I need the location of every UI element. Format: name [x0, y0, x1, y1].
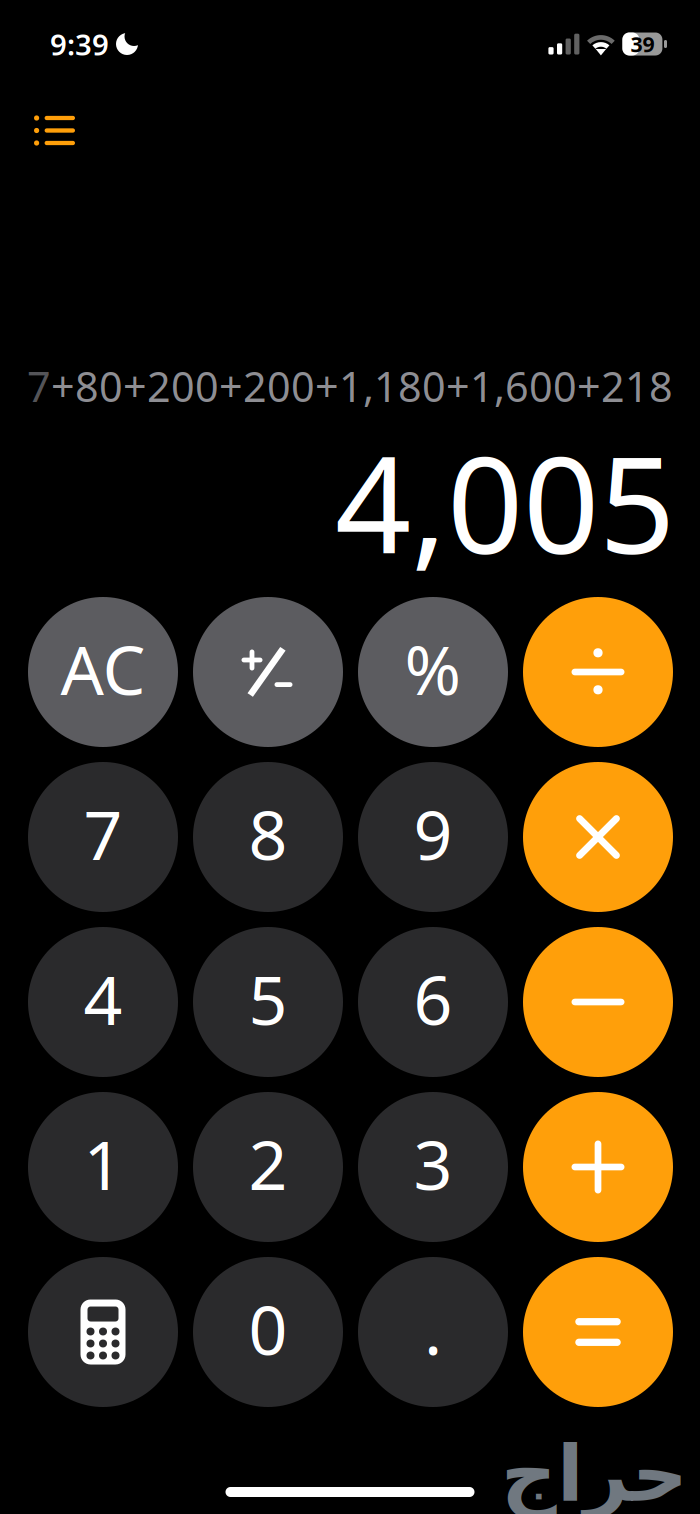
staticText: 39: [630, 30, 654, 58]
staticText: حراج: [500, 1430, 687, 1514]
button[interactable]: Percent: [358, 597, 508, 747]
staticText: .: [424, 1283, 442, 1374]
button[interactable]: 9: [358, 762, 508, 912]
button[interactable]: History: [20, 99, 88, 161]
button[interactable]: 4: [28, 927, 178, 1077]
button[interactable]: Add: [523, 1092, 673, 1242]
staticText: 4: [83, 953, 122, 1044]
button[interactable]: Subtract: [523, 927, 673, 1077]
button[interactable]: 1: [28, 1092, 178, 1242]
staticText: 0: [248, 1283, 287, 1374]
staticText: 7: [83, 788, 122, 879]
button[interactable]: 3: [358, 1092, 508, 1242]
staticText: 4,005: [335, 413, 675, 591]
staticText: 9:39: [50, 24, 109, 63]
staticText: +80+200+200+1,180+1,600+218: [51, 359, 673, 413]
staticText: 9: [413, 788, 452, 879]
staticText: 2: [248, 1118, 287, 1209]
button[interactable]: 8: [193, 762, 343, 912]
button[interactable]: Divide: [523, 597, 673, 747]
staticText: 8: [248, 788, 287, 879]
staticText: %: [404, 623, 461, 714]
button[interactable]: 7: [28, 762, 178, 912]
button[interactable]: All clear: [28, 597, 178, 747]
staticText: 3: [413, 1118, 452, 1209]
button[interactable]: Plus minus: [193, 597, 343, 747]
staticText: 7: [27, 359, 51, 413]
button[interactable]: 5: [193, 927, 343, 1077]
staticText: 1: [83, 1118, 122, 1209]
button[interactable]: Equals: [523, 1257, 673, 1407]
staticText: 5: [248, 953, 287, 1044]
button[interactable]: 0: [193, 1257, 343, 1407]
staticText: AC: [60, 623, 145, 714]
staticText: 6: [413, 953, 452, 1044]
button[interactable]: Multiply: [523, 762, 673, 912]
button[interactable]: Decimal: [358, 1257, 508, 1407]
button[interactable]: 6: [358, 927, 508, 1077]
button[interactable]: Calculator: [28, 1257, 178, 1407]
button[interactable]: 2: [193, 1092, 343, 1242]
